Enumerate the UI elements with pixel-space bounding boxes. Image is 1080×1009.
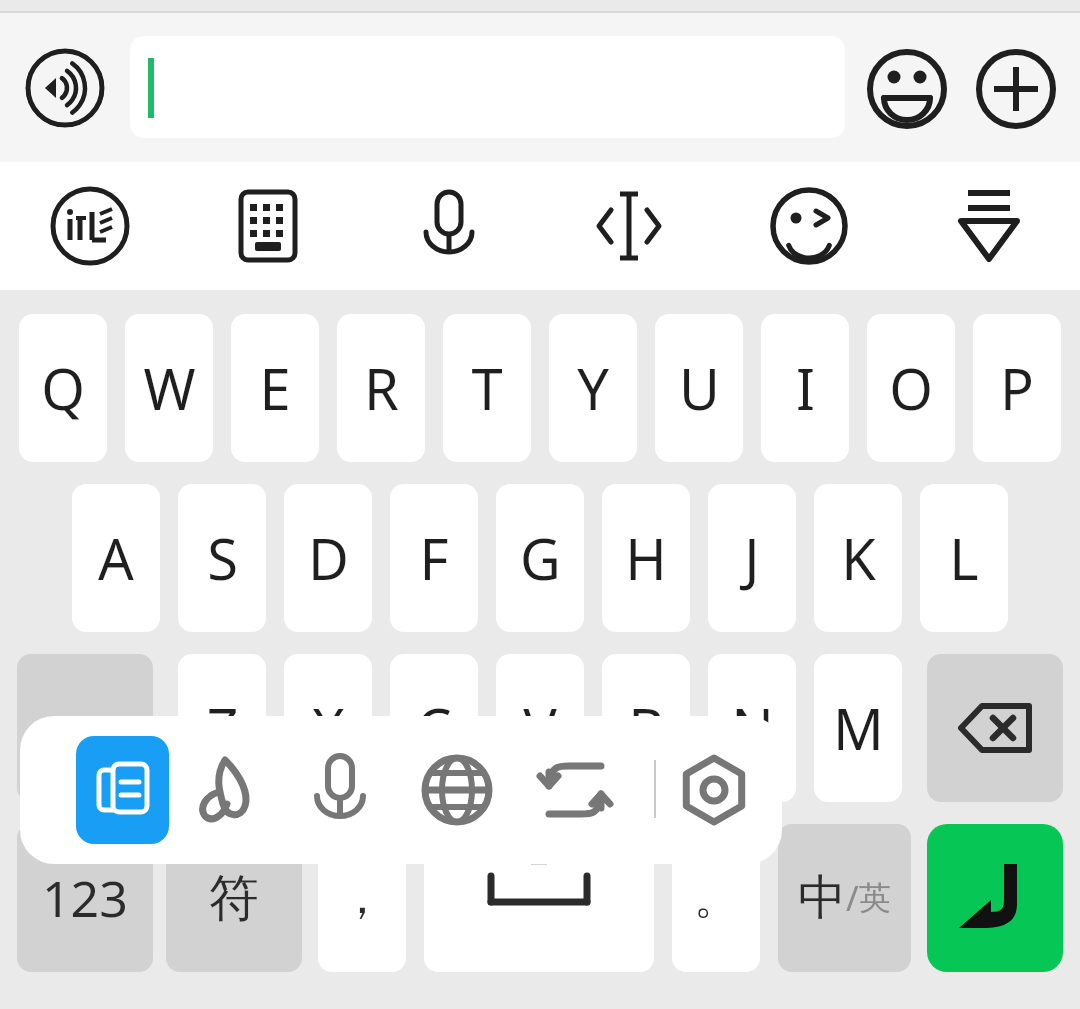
button[interactable]: M — [814, 654, 902, 802]
staticText: R — [364, 350, 399, 426]
button[interactable]: Voice — [403, 180, 495, 272]
staticText: 符 — [209, 867, 259, 930]
staticText: 。 — [694, 871, 738, 926]
staticText: ， — [339, 869, 385, 927]
button[interactable]: Add — [975, 48, 1057, 130]
button[interactable]: J — [708, 484, 796, 632]
button[interactable]: Cursor edit — [583, 180, 675, 272]
button[interactable]: L — [920, 484, 1008, 632]
button[interactable]: 。 — [672, 824, 760, 972]
staticText: B — [628, 690, 665, 766]
staticText: 英 — [859, 878, 891, 918]
staticText: H — [625, 520, 667, 596]
staticText: L — [949, 520, 979, 596]
staticText: S — [207, 520, 238, 596]
button[interactable]: Switch — [530, 745, 620, 835]
button[interactable]: R — [337, 314, 425, 462]
button[interactable]: Enter — [927, 824, 1063, 972]
button[interactable]: Voice input — [295, 745, 385, 835]
button[interactable]: Z — [178, 654, 266, 802]
button[interactable]: H — [602, 484, 690, 632]
staticText: A — [98, 520, 134, 596]
button[interactable]: C — [390, 654, 478, 802]
button[interactable]: B — [602, 654, 690, 802]
button[interactable]: P — [973, 314, 1061, 462]
button[interactable]: T — [443, 314, 531, 462]
staticText: 123 — [42, 864, 128, 932]
staticText: E — [259, 350, 291, 426]
staticText: W — [143, 350, 196, 426]
staticText: P — [1000, 350, 1034, 426]
button[interactable]: iFlytek — [44, 180, 136, 272]
staticText: G — [520, 520, 561, 596]
staticText: D — [308, 520, 349, 596]
staticText: C — [416, 690, 452, 766]
button[interactable]: Emoji — [866, 48, 948, 130]
staticText: N — [731, 690, 774, 766]
button[interactable]: Settings — [669, 745, 759, 835]
staticText: U — [679, 350, 720, 426]
staticText: K — [841, 520, 876, 596]
button[interactable]: W — [125, 314, 213, 462]
button[interactable]: F — [390, 484, 478, 632]
button[interactable]: K — [814, 484, 902, 632]
button[interactable]: 中 — [778, 824, 911, 972]
button[interactable]: Clipboard — [76, 736, 169, 844]
button[interactable]: Hide keyboard — [943, 180, 1035, 272]
staticText: Z — [206, 690, 239, 766]
staticText: X — [312, 690, 345, 766]
button[interactable]: 123 — [17, 824, 153, 972]
button[interactable]: Y — [549, 314, 637, 462]
staticText: M — [833, 690, 884, 766]
staticText: / — [846, 875, 859, 921]
button[interactable]: Q — [19, 314, 107, 462]
button[interactable]: Space — [424, 824, 654, 972]
button[interactable]: X — [284, 654, 372, 802]
staticText: Y — [577, 350, 609, 426]
button[interactable]: Keyboard layout — [222, 180, 314, 272]
button[interactable]: N — [708, 654, 796, 802]
button[interactable]: Backspace — [927, 654, 1063, 802]
button[interactable] — [130, 36, 845, 138]
staticText: T — [471, 350, 503, 426]
button[interactable]: G — [496, 484, 584, 632]
button[interactable]: D — [284, 484, 372, 632]
button[interactable]: E — [231, 314, 319, 462]
staticText: Q — [41, 350, 85, 426]
staticText: V — [523, 690, 557, 766]
button[interactable]: 符 — [166, 824, 302, 972]
button[interactable]: Shift — [17, 654, 153, 802]
button[interactable]: V — [496, 654, 584, 802]
button[interactable]: Translate — [412, 745, 502, 835]
button[interactable]: Sticker — [763, 180, 855, 272]
button[interactable]: A — [72, 484, 160, 632]
staticText: I — [796, 350, 815, 426]
button[interactable]: Voice input — [25, 48, 105, 128]
staticText: 中 — [798, 868, 846, 928]
button[interactable]: I — [761, 314, 849, 462]
staticText: F — [419, 520, 449, 596]
button[interactable]: U — [655, 314, 743, 462]
staticText: J — [744, 520, 760, 596]
button[interactable]: S — [178, 484, 266, 632]
button[interactable]: ， — [318, 824, 406, 972]
button[interactable]: Handwriting — [180, 745, 270, 835]
staticText: O — [889, 350, 933, 426]
button[interactable]: O — [867, 314, 955, 462]
